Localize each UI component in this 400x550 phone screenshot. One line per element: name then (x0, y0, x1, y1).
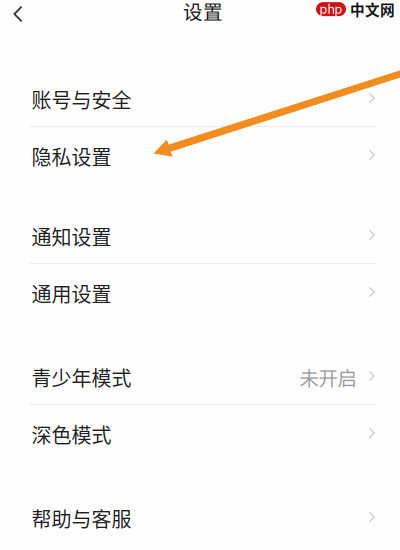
staticText: 设置 (183, 0, 223, 25)
button[interactable]: 青少年模式 (0, 348, 400, 404)
button[interactable]: 帮助与客服 (0, 489, 400, 545)
staticText: php (319, 1, 342, 17)
button[interactable]: 通知设置 (0, 207, 400, 263)
button[interactable]: 账号与安全 (0, 70, 400, 126)
staticText: 隐私设置 (31, 142, 111, 171)
staticText: 中文网 (350, 0, 395, 20)
staticText: 通知设置 (31, 222, 111, 251)
staticText: 未开启 (300, 363, 357, 391)
button[interactable]: 深色模式 (0, 405, 400, 461)
staticText: 青少年模式 (31, 363, 131, 392)
staticText: 通用设置 (31, 279, 111, 308)
staticText: 帮助与客服 (31, 504, 131, 533)
staticText: 账号与安全 (31, 85, 131, 114)
button[interactable]: 隐私设置 (0, 127, 400, 183)
staticText: 深色模式 (31, 420, 111, 449)
button[interactable]: Back (0, 0, 40, 36)
button[interactable]: 通用设置 (0, 264, 400, 320)
